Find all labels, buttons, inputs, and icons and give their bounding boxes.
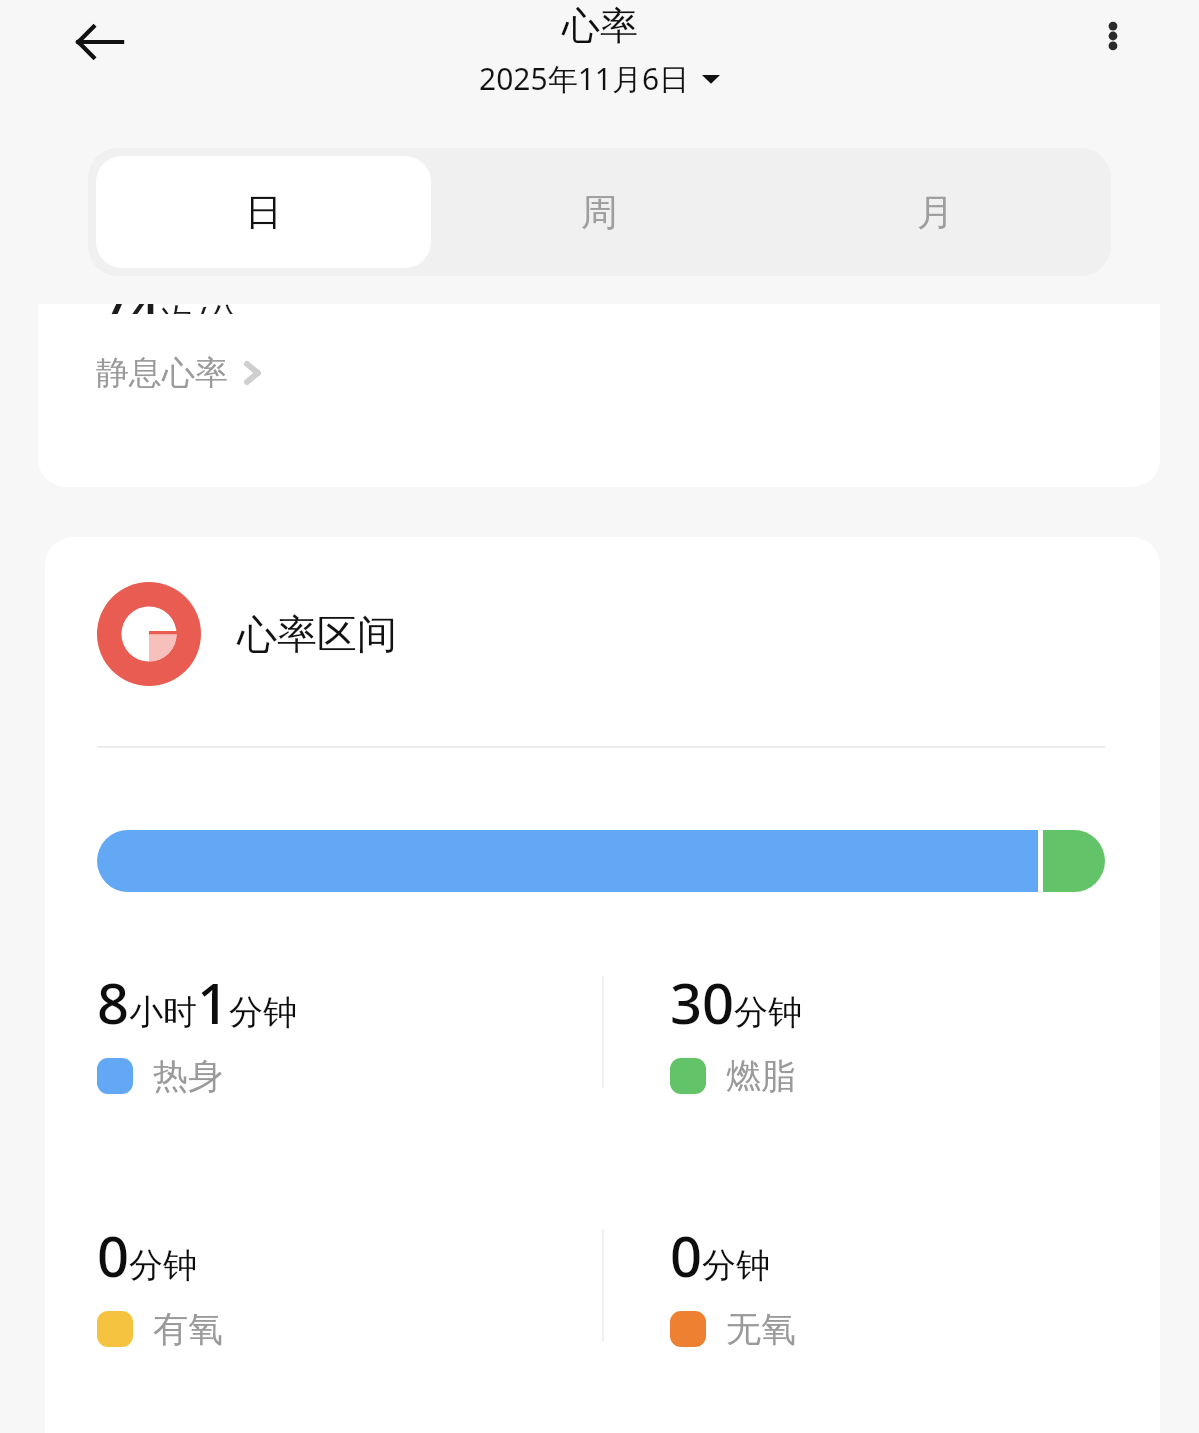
staticText: 心率 [562,2,638,50]
button[interactable]: 月 [767,156,1103,268]
button[interactable]: 30分钟 [602,964,1160,1119]
staticText: 74次/分 [96,304,241,314]
staticText: 8小时1分钟 [97,964,298,1040]
staticText: 有氧 [153,1307,223,1351]
button[interactable]: 0分钟 [602,1217,1160,1372]
staticText: 0分钟 [670,1217,771,1293]
staticText: 燃脂 [726,1054,796,1098]
button[interactable]: 静息心率 [96,352,268,394]
button[interactable]: Back [64,6,136,78]
staticText: 静息心率 [96,352,228,394]
staticText: 热身 [153,1054,223,1098]
staticText: 月 [917,189,954,236]
button[interactable]: 心率区间 [45,582,1160,686]
staticText: 日 [245,189,282,236]
staticText: 心率区间 [237,609,397,659]
button[interactable]: 8小时1分钟 [45,964,602,1119]
staticText: 无氧 [726,1307,796,1351]
button[interactable]: 2025年11月6日 [479,58,720,99]
button[interactable]: 周 [431,156,767,268]
staticText: 2025年11月6日 [479,58,690,99]
button[interactable]: 日 [96,156,431,268]
button[interactable]: 0分钟 [45,1217,602,1372]
staticText: 30分钟 [670,964,803,1040]
staticText: 周 [581,189,618,236]
button[interactable]: More options [1081,4,1145,68]
staticText: 0分钟 [97,1217,198,1293]
